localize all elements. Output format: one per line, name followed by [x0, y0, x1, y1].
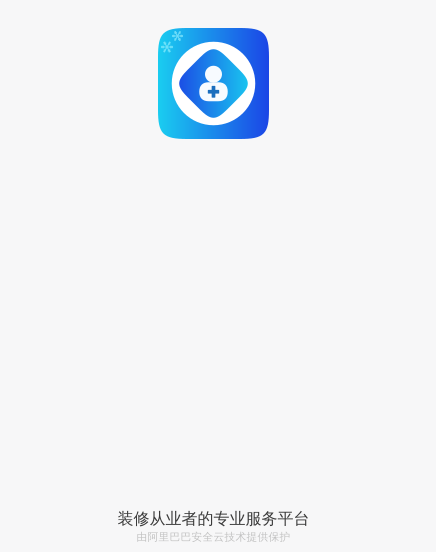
staticText: 装修从业者的专业服务平台: [117, 509, 309, 528]
staticText: 由阿里巴巴安全云技术提供保护: [136, 530, 290, 543]
